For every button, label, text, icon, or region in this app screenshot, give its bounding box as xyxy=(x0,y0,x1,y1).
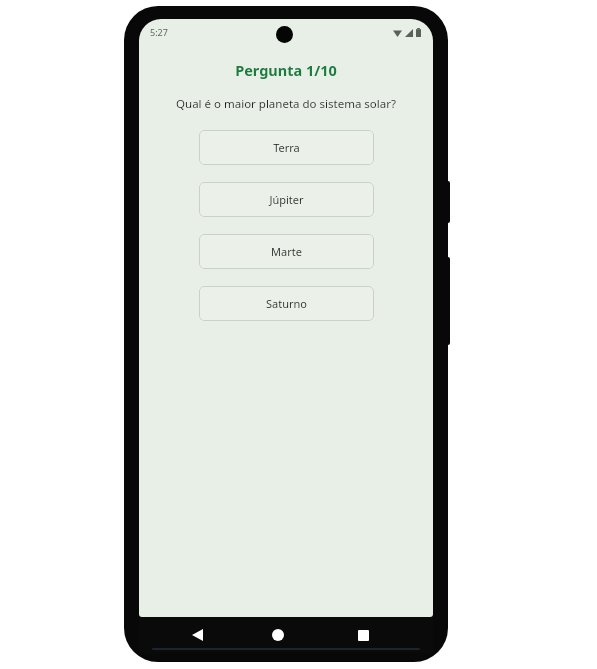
button[interactable]: Home xyxy=(265,617,291,653)
staticText: Terra xyxy=(273,140,300,155)
staticText: Marte xyxy=(271,244,302,259)
button[interactable]: Júpiter xyxy=(199,182,374,217)
button[interactable]: Recent apps xyxy=(350,617,376,653)
staticText: 5:27 xyxy=(150,26,168,38)
staticText: Pergunta 1/10 xyxy=(235,60,337,80)
staticText: Qual é o maior planeta do sistema solar? xyxy=(176,96,396,112)
button[interactable]: Terra xyxy=(199,130,374,165)
staticText: Saturno xyxy=(266,296,307,311)
button[interactable]: Marte xyxy=(199,234,374,269)
staticText: Júpiter xyxy=(269,192,304,207)
button[interactable]: Saturno xyxy=(199,286,374,321)
button[interactable]: Back xyxy=(184,617,210,653)
